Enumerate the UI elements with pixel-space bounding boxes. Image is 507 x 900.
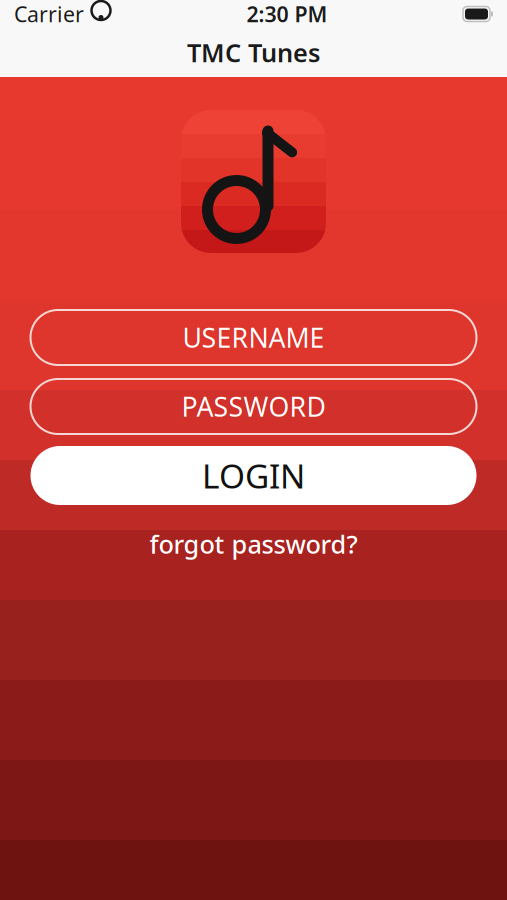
staticText: 2:30 PM xyxy=(246,0,327,28)
staticText: PASSWORD xyxy=(181,389,325,424)
staticText: forgot password? xyxy=(149,527,357,561)
staticText: LOGIN xyxy=(202,453,305,498)
button[interactable]: USERNAME xyxy=(30,310,476,365)
button[interactable]: LOGIN xyxy=(30,446,476,505)
staticText: USERNAME xyxy=(182,320,324,355)
staticText: TMC Tunes xyxy=(187,36,320,69)
button[interactable]: forgot password? xyxy=(131,519,375,569)
button[interactable]: PASSWORD xyxy=(30,379,476,434)
staticText: Carrier xyxy=(14,0,84,28)
